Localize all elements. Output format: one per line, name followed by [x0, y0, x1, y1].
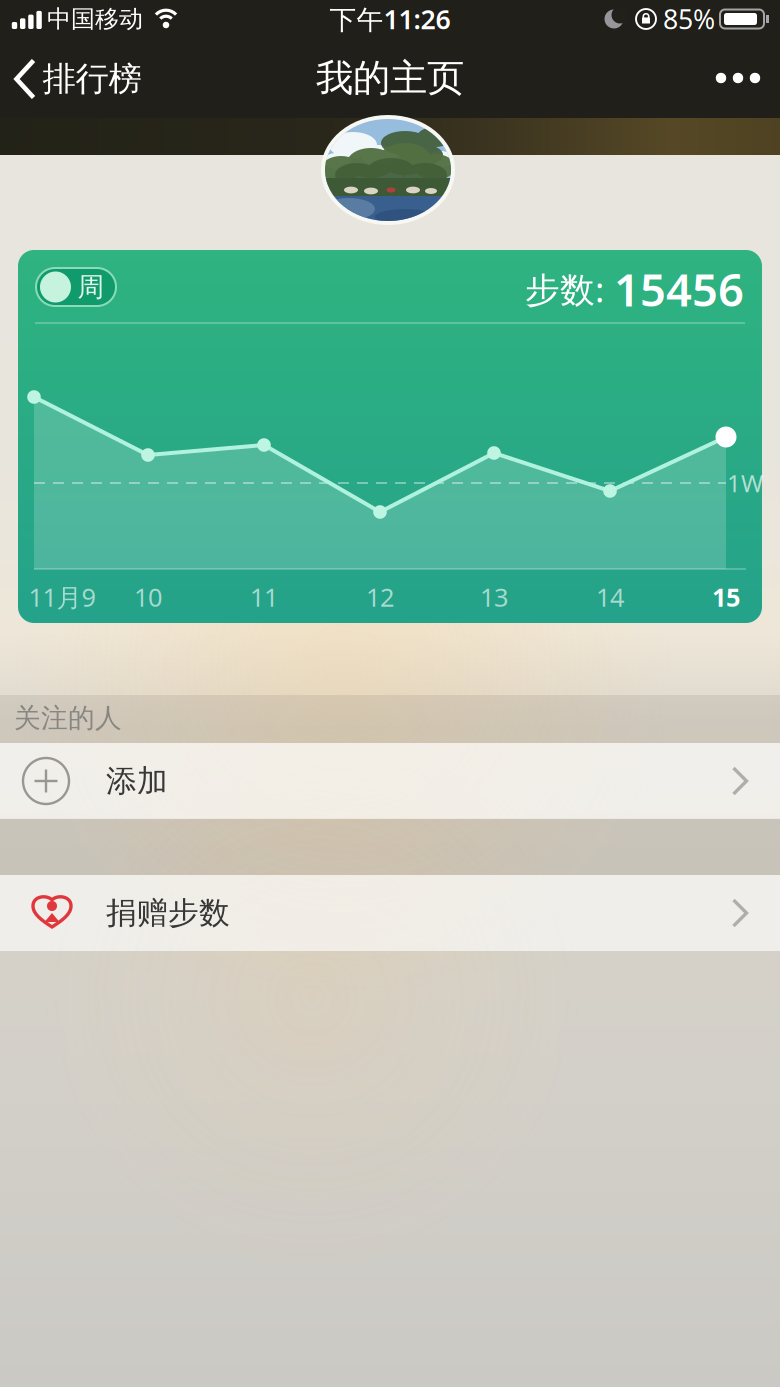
- staticText: 85%: [663, 1, 715, 37]
- staticText: 15: [712, 580, 740, 614]
- staticText: 添加: [106, 762, 168, 800]
- staticText: 14: [596, 580, 624, 614]
- staticText: 10: [134, 580, 162, 614]
- button[interactable]: 头像: [321, 115, 455, 225]
- staticText: 捐赠步数: [106, 894, 230, 932]
- staticText: 关注的人: [14, 702, 122, 734]
- staticText: 下午11:26: [329, 1, 450, 37]
- button[interactable]: 排行榜: [16, 58, 141, 99]
- staticText: 步数:: [525, 266, 604, 312]
- staticText: 13: [480, 580, 508, 614]
- staticText: 12: [366, 580, 394, 614]
- staticText: 1W: [727, 467, 763, 499]
- button[interactable]: 捐赠步数: [0, 875, 780, 951]
- staticText: 我的主页: [316, 55, 464, 101]
- staticText: 11: [250, 580, 278, 614]
- staticText: 11月9: [28, 580, 95, 614]
- staticText: 中国移动: [47, 4, 143, 34]
- staticText: 周: [77, 271, 104, 303]
- button[interactable]: 周/月切换: [36, 268, 116, 306]
- button[interactable]: 添加: [0, 743, 780, 819]
- staticText: 排行榜: [42, 58, 141, 99]
- button[interactable]: 更多: [711, 55, 765, 101]
- staticText: 15456: [614, 259, 744, 319]
